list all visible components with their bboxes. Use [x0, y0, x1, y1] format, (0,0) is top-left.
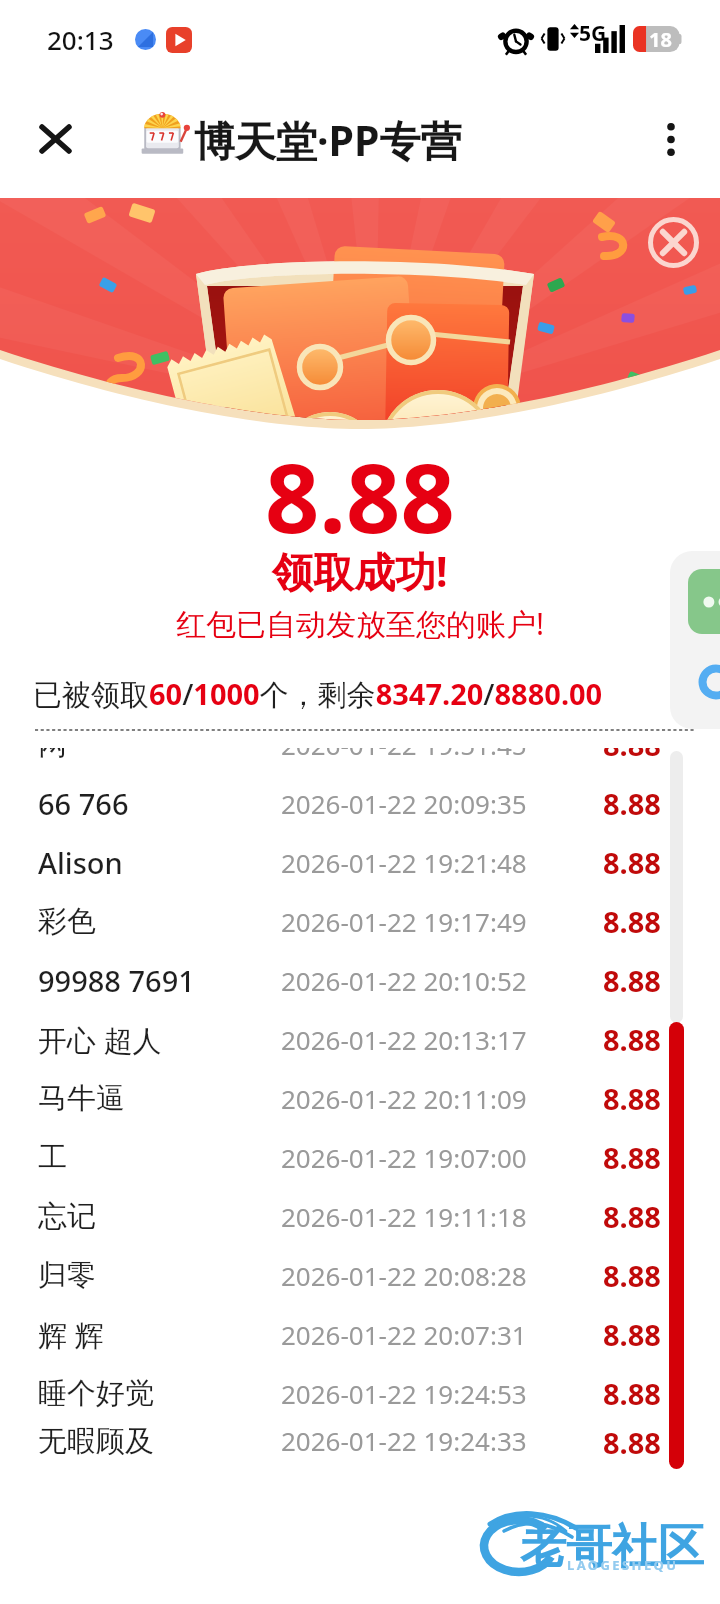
staticText: 8.88 — [603, 961, 661, 1000]
staticText: 8.88 — [603, 1374, 661, 1413]
staticText: 工 — [38, 1139, 67, 1176]
button[interactable]: 忘记 — [0, 1187, 720, 1246]
button[interactable]: Dismiss banner — [643, 212, 703, 272]
staticText: 2026-01-22 19:17:49 — [281, 904, 527, 939]
staticText: 红包已自动发放至您的账户! — [176, 603, 545, 644]
staticText: 2026-01-22 20:09:35 — [281, 786, 527, 821]
staticText: 18 — [649, 26, 672, 52]
button[interactable]: 彩色 — [0, 892, 720, 951]
staticText: 8.88 — [603, 902, 661, 941]
staticText: 忘记 — [38, 1198, 96, 1235]
staticText: 2026-01-22 19:07:00 — [281, 1140, 527, 1175]
staticText: 8.88 — [603, 1256, 661, 1295]
staticText: 8.88 — [603, 1079, 661, 1118]
button[interactable]: 网 — [0, 748, 720, 774]
button[interactable]: 66 766 — [0, 774, 720, 833]
staticText: 2026-01-22 20:11:09 — [281, 1081, 527, 1116]
staticText: 博天堂·PP专营 — [194, 112, 462, 168]
staticText: 马牛逼 — [38, 1080, 125, 1117]
button[interactable]: Refresh — [694, 660, 720, 704]
button[interactable]: 无暇顾及 — [0, 1423, 720, 1455]
staticText: 彩色 — [38, 903, 96, 940]
staticText: 睡个好觉 — [38, 1375, 154, 1412]
staticText: 2026-01-22 19:24:33 — [281, 1423, 527, 1455]
button[interactable]: 辉 辉 — [0, 1305, 720, 1364]
button[interactable]: More options — [637, 105, 705, 173]
staticText: 领取成功! — [272, 543, 448, 599]
staticText: 8.88 — [603, 843, 661, 882]
staticText: 无暇顾及 — [38, 1423, 154, 1455]
staticText: 5G — [579, 19, 607, 48]
staticText: 已被领取60/1000个，剩余8347.20/8880.00 — [33, 674, 603, 714]
staticText: 2026-01-22 20:08:28 — [281, 1258, 527, 1293]
staticText: 辉 辉 — [38, 1315, 104, 1355]
button[interactable]: 开心 超人 — [0, 1010, 720, 1069]
staticText: 2026-01-22 20:10:52 — [281, 963, 527, 998]
staticText: 开心 超人 — [38, 1020, 162, 1060]
staticText: 网 — [38, 748, 67, 763]
staticText: 2026-01-22 19:21:48 — [281, 845, 527, 880]
button[interactable]: 归零 — [0, 1246, 720, 1305]
staticText: 99988 7691 — [38, 961, 195, 1000]
staticText: 8.88 — [265, 431, 455, 560]
staticText: LAOGESHEQU — [567, 1556, 679, 1574]
staticText: 归零 — [38, 1257, 96, 1294]
staticText: 2026-01-22 20:13:17 — [281, 1022, 527, 1057]
button[interactable]: More actions — [688, 569, 720, 634]
button[interactable]: 工 — [0, 1128, 720, 1187]
staticText: 8.88 — [603, 784, 661, 823]
staticText: 老哥社区 — [520, 1518, 704, 1576]
staticText: 66 766 — [38, 784, 129, 823]
staticText: 8.88 — [603, 1423, 661, 1455]
button[interactable]: 马牛逼 — [0, 1069, 720, 1128]
button[interactable]: Close — [21, 105, 89, 173]
button[interactable]: 睡个好觉 — [0, 1364, 720, 1423]
staticText: 8.88 — [603, 1138, 661, 1177]
staticText: 2026-01-22 20:07:31 — [281, 1317, 527, 1352]
staticText: 8.88 — [603, 748, 661, 764]
button[interactable]: 99988 7691 — [0, 951, 720, 1010]
staticText: 8.88 — [603, 1020, 661, 1059]
staticText: 2026-01-22 19:11:18 — [281, 1199, 527, 1234]
staticText: 2026-01-22 19:24:53 — [281, 1376, 527, 1411]
staticText: 2026-01-22 19:51:45 — [281, 748, 527, 762]
staticText: 20:13 — [47, 22, 114, 57]
staticText: 8.88 — [603, 1197, 661, 1236]
button[interactable]: Alison — [0, 833, 720, 892]
staticText: Alison — [38, 843, 123, 882]
staticText: 8.88 — [603, 1315, 661, 1354]
